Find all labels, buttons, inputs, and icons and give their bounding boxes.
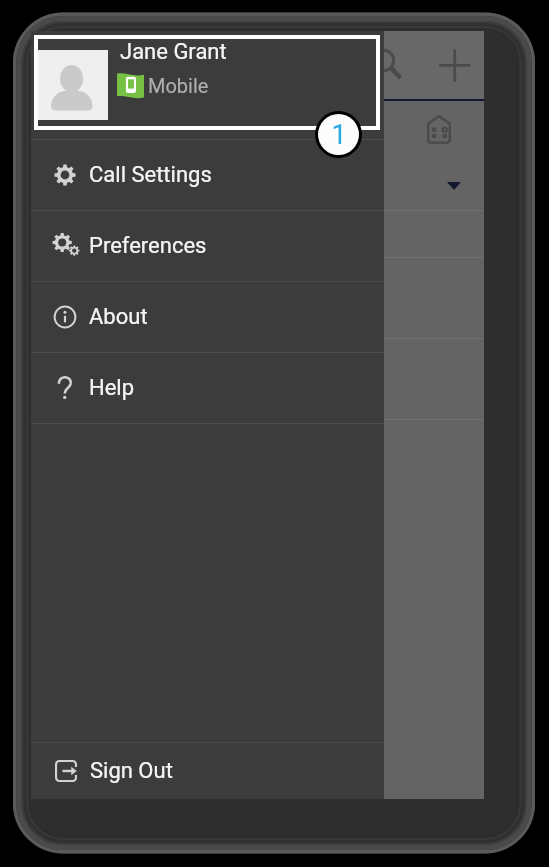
button[interactable]: Expand xyxy=(432,164,476,208)
button[interactable]: Workplace xyxy=(417,107,461,151)
button[interactable]: About xyxy=(31,282,384,352)
button[interactable]: Preferences xyxy=(31,211,384,281)
button[interactable]: Jane Grant xyxy=(38,39,376,126)
staticText: Jane Grant xyxy=(120,39,227,65)
staticText: Mobile xyxy=(148,74,209,97)
staticText: Sign Out xyxy=(90,758,173,784)
staticText: About xyxy=(89,304,148,330)
staticText: Call Settings xyxy=(89,162,212,188)
staticText: 1 xyxy=(331,119,347,151)
button[interactable]: Help xyxy=(31,353,384,423)
button[interactable]: Search xyxy=(364,41,404,81)
staticText: Preferences xyxy=(89,233,207,259)
button[interactable]: Sign Out xyxy=(31,743,384,799)
button[interactable]: 1 xyxy=(318,114,359,155)
button[interactable]: Add xyxy=(434,45,474,85)
button[interactable]: Call Settings xyxy=(31,140,384,210)
staticText: Help xyxy=(89,375,135,401)
